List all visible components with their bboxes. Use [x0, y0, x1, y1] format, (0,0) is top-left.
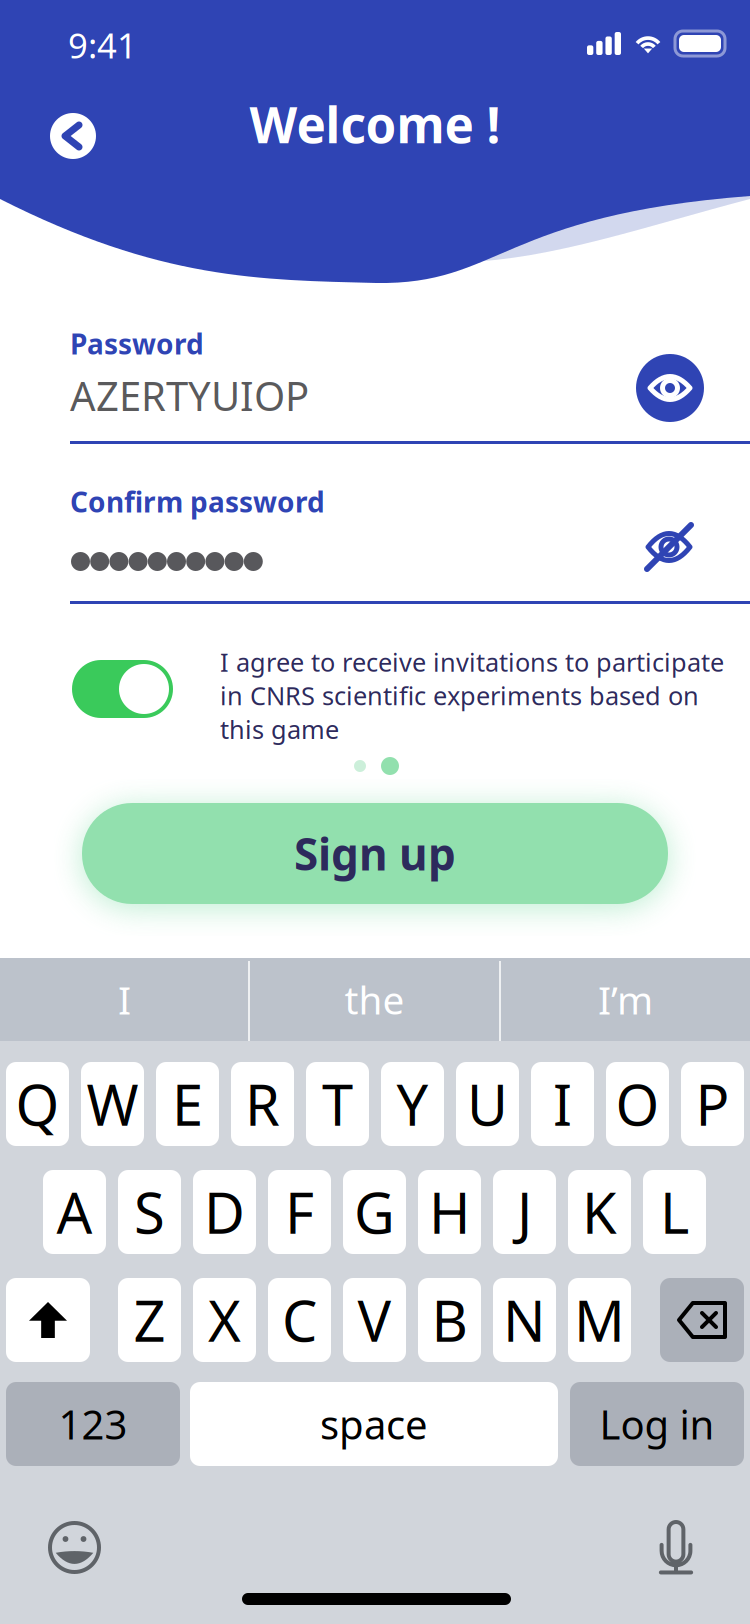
staticText: Confirm password [70, 483, 325, 520]
staticText: U [467, 1067, 508, 1141]
button[interactable]: I’m [501, 958, 750, 1041]
button[interactable]: T [306, 1062, 369, 1146]
button[interactable]: S [118, 1170, 181, 1254]
staticText: I [118, 974, 131, 1025]
button[interactable]: Agree to invitations [72, 660, 173, 718]
button[interactable]: W [81, 1062, 144, 1146]
button[interactable]: Sign up [82, 803, 668, 904]
button[interactable]: V [343, 1278, 406, 1362]
button[interactable]: R [231, 1062, 294, 1146]
button[interactable]: K [568, 1170, 631, 1254]
staticText: X [208, 1283, 241, 1357]
staticText: I agree to receive invitations to partic… [220, 645, 724, 746]
staticText: N [503, 1283, 546, 1357]
button[interactable]: H [418, 1170, 481, 1254]
button[interactable]: Q [6, 1062, 69, 1146]
staticText: J [517, 1175, 532, 1249]
button[interactable]: D [193, 1170, 256, 1254]
button[interactable]: Delete [660, 1278, 744, 1362]
staticText: AZERTYUIOP [70, 369, 309, 422]
staticText: E [172, 1067, 203, 1141]
staticText: Welcome ! [249, 91, 500, 157]
staticText: Y [396, 1067, 428, 1141]
staticText: 9:41 [68, 22, 137, 68]
button[interactable]: I [0, 958, 249, 1041]
staticText: K [582, 1175, 617, 1249]
button[interactable]: C [268, 1278, 331, 1362]
button[interactable]: O [606, 1062, 669, 1146]
button[interactable]: F [268, 1170, 331, 1254]
button[interactable]: N [493, 1278, 556, 1362]
button[interactable]: M [568, 1278, 631, 1362]
staticText: G [354, 1175, 395, 1249]
staticText: A [56, 1175, 92, 1249]
staticText: V [357, 1283, 391, 1357]
staticText: B [431, 1283, 467, 1357]
button[interactable]: B [418, 1278, 481, 1362]
button[interactable]: Emoji [48, 1521, 101, 1574]
staticText: H [429, 1175, 470, 1249]
staticText: Log in [599, 1397, 714, 1450]
staticText: 123 [58, 1397, 127, 1450]
button[interactable]: Hide password [645, 523, 693, 571]
button[interactable]: Y [381, 1062, 444, 1146]
staticText: W [86, 1067, 138, 1141]
button[interactable]: J [493, 1170, 556, 1254]
button[interactable]: the [250, 958, 499, 1041]
staticText: space [320, 1397, 428, 1450]
button[interactable]: G [343, 1170, 406, 1254]
staticText: M [574, 1283, 625, 1357]
staticText: Password [70, 325, 204, 362]
staticText: S [134, 1175, 165, 1249]
button[interactable]: space [190, 1382, 558, 1466]
button[interactable]: X [193, 1278, 256, 1362]
staticText: D [204, 1175, 245, 1249]
staticText: Q [15, 1067, 59, 1141]
button[interactable]: Shift [6, 1278, 90, 1362]
button[interactable]: I [531, 1062, 594, 1146]
staticText: C [282, 1283, 317, 1357]
button[interactable]: 123 [6, 1382, 180, 1466]
staticText: I’m [598, 974, 653, 1025]
staticText: the [344, 974, 404, 1025]
button[interactable]: L [643, 1170, 706, 1254]
button[interactable]: A [43, 1170, 106, 1254]
staticText: T [322, 1067, 353, 1141]
staticText: O [615, 1067, 659, 1141]
staticText: Z [133, 1283, 165, 1357]
button[interactable]: Log in [570, 1382, 744, 1466]
staticText: Sign up [294, 824, 456, 883]
button[interactable]: Dictation [658, 1522, 694, 1574]
staticText: I [553, 1067, 572, 1141]
button[interactable]: E [156, 1062, 219, 1146]
staticText: L [660, 1175, 689, 1249]
staticText: F [285, 1175, 314, 1249]
button[interactable]: Back [50, 113, 96, 159]
staticText: P [695, 1067, 729, 1141]
button[interactable]: Z [118, 1278, 181, 1362]
button[interactable]: U [456, 1062, 519, 1146]
staticText: R [245, 1067, 280, 1141]
button[interactable]: Show password [636, 354, 704, 422]
button[interactable]: P [681, 1062, 744, 1146]
